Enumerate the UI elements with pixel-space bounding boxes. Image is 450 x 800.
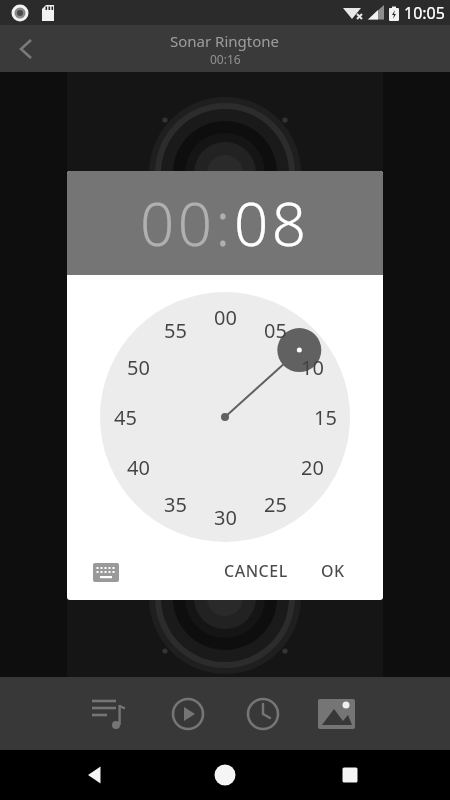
staticText: 08 <box>234 182 310 264</box>
staticText: 15 <box>314 404 337 430</box>
staticText: 55 <box>164 317 187 343</box>
staticText: 50 <box>127 354 150 380</box>
button[interactable] <box>89 558 123 586</box>
button[interactable] <box>326 751 374 799</box>
staticText: 00: <box>140 182 234 264</box>
button[interactable] <box>337 677 450 750</box>
button[interactable]: OK <box>303 551 363 591</box>
staticText: 00:16 <box>210 51 241 67</box>
staticText: CANCEL <box>224 560 288 582</box>
staticText: 30 <box>214 504 237 530</box>
staticText: 20 <box>301 454 324 480</box>
staticText: 05 <box>264 317 287 343</box>
button[interactable]: CANCEL <box>206 551 306 591</box>
button[interactable] <box>72 751 120 799</box>
staticText: 35 <box>164 491 187 517</box>
button[interactable] <box>8 31 44 67</box>
button[interactable] <box>201 751 249 799</box>
staticText: 00 <box>214 304 237 330</box>
button[interactable] <box>224 677 337 750</box>
staticText: OK <box>321 560 345 582</box>
staticText: Sonar Ringtone <box>170 31 280 51</box>
button[interactable] <box>112 677 224 750</box>
staticText: 40 <box>127 454 150 480</box>
staticText: 25 <box>264 491 287 517</box>
staticText: 10:05 <box>404 2 445 24</box>
staticText: 45 <box>114 404 137 430</box>
button[interactable] <box>0 677 112 750</box>
staticText: 10 <box>301 354 324 380</box>
